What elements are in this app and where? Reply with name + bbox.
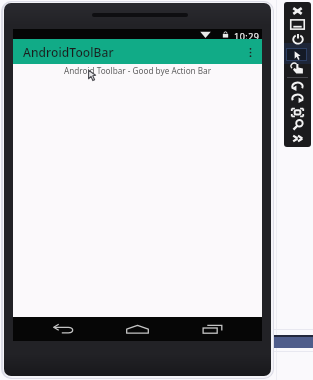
button[interactable]: Home [117,317,157,341]
button[interactable]: Touch [286,61,309,75]
button[interactable]: More tools [286,131,309,145]
button[interactable]: Rotate left [286,79,309,93]
button[interactable]: Screenshot [286,105,309,119]
staticText: AndroidToolBar [23,44,114,60]
button[interactable]: Recents [193,317,233,341]
button[interactable]: Zoom [286,118,309,132]
button[interactable]: Rotate right [286,91,309,105]
button[interactable]: Select pointer [286,48,309,62]
staticText: 10:29 [234,30,260,40]
button[interactable]: Minimize [286,17,309,31]
staticText: Android Toolbar - Good bye Action Bar [13,65,262,76]
button[interactable]: Close [286,4,309,18]
button[interactable]: More options [242,44,258,60]
button[interactable]: Back [44,317,84,341]
button[interactable]: Power [286,32,309,46]
